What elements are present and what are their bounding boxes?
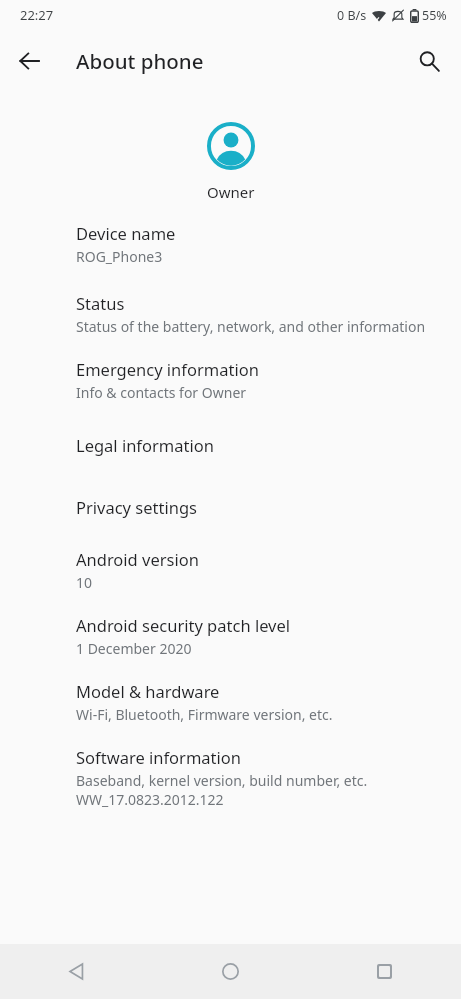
staticText: 22:27 bbox=[20, 6, 54, 24]
button[interactable]: Emergency information bbox=[0, 336, 461, 402]
staticText: WW_17.0823.2012.122 bbox=[76, 790, 224, 809]
button[interactable]: Software information bbox=[0, 724, 461, 809]
button[interactable]: Privacy settings bbox=[0, 456, 461, 518]
button[interactable]: Home bbox=[153, 944, 307, 999]
staticText: Info & contacts for Owner bbox=[76, 383, 247, 402]
button[interactable]: Android version bbox=[0, 518, 461, 592]
staticText: Emergency information bbox=[76, 358, 259, 380]
staticText: Status bbox=[76, 292, 125, 314]
button[interactable]: Model & hardware bbox=[0, 658, 461, 724]
staticText: 0 B/s bbox=[337, 7, 367, 24]
staticText: 10 bbox=[76, 573, 93, 592]
staticText: 1 December 2020 bbox=[76, 639, 192, 658]
staticText: Wi-Fi, Bluetooth, Firmware version, etc. bbox=[76, 705, 333, 724]
staticText: About phone bbox=[76, 47, 204, 75]
button[interactable]: Android security patch level bbox=[0, 592, 461, 658]
staticText: Device name bbox=[76, 222, 176, 244]
staticText: Model & hardware bbox=[76, 680, 220, 702]
staticText: Android security patch level bbox=[76, 614, 291, 636]
button[interactable]: Back bbox=[6, 37, 54, 85]
button[interactable]: Status bbox=[0, 266, 461, 336]
button[interactable]: Search bbox=[405, 37, 453, 85]
staticText: ROG_Phone3 bbox=[76, 247, 163, 266]
staticText: Owner bbox=[207, 182, 255, 202]
staticText: Status of the battery, network, and othe… bbox=[76, 317, 426, 336]
staticText: Legal information bbox=[76, 434, 214, 456]
button[interactable]: Recent apps bbox=[307, 944, 461, 999]
button[interactable]: Device name bbox=[0, 222, 461, 266]
staticText: Software information bbox=[76, 746, 241, 768]
staticText: Privacy settings bbox=[76, 496, 197, 518]
staticText: Baseband, kernel version, build number, … bbox=[76, 771, 368, 790]
button[interactable]: Legal information bbox=[0, 402, 461, 456]
staticText: Android version bbox=[76, 548, 199, 570]
button[interactable]: Back bbox=[0, 944, 153, 999]
staticText: 55% bbox=[422, 7, 447, 24]
